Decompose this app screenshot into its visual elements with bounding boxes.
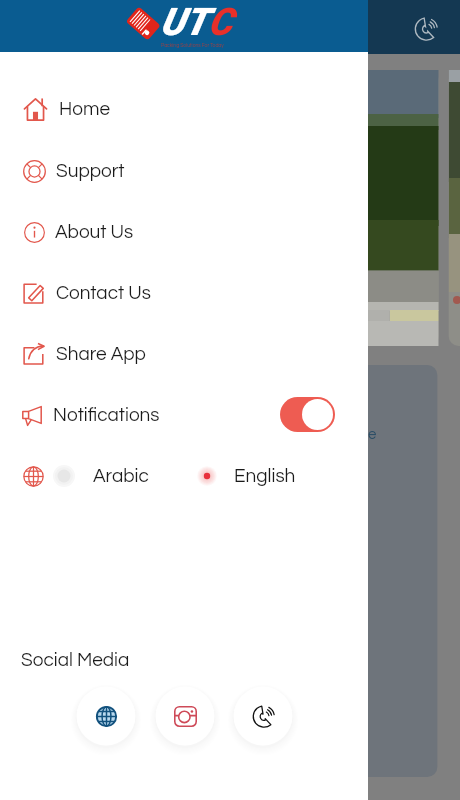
staticText: About Us xyxy=(55,222,134,242)
button[interactable]: Home xyxy=(0,78,368,139)
staticText: Contact Us xyxy=(56,283,151,303)
button[interactable]: Call xyxy=(414,17,438,41)
button[interactable]: Support xyxy=(0,140,368,201)
button[interactable]: About Us xyxy=(0,201,368,262)
staticText: Notifications xyxy=(53,405,160,425)
button[interactable]: Arabic xyxy=(51,463,149,489)
button[interactable]: Call xyxy=(234,687,293,746)
staticText: Packing Solutions For Today xyxy=(161,43,224,48)
button[interactable]: Contact Us xyxy=(0,262,368,323)
staticText: Share App xyxy=(56,344,146,364)
button[interactable]: Instagram xyxy=(156,687,215,746)
staticText: Social Media xyxy=(21,650,130,670)
button[interactable]: Share App xyxy=(0,323,368,384)
button[interactable]: Notifications xyxy=(0,384,368,445)
staticText: C xyxy=(208,0,233,45)
staticText: English xyxy=(234,466,296,486)
staticText: UT xyxy=(160,0,208,45)
staticText: e xyxy=(368,427,377,442)
button[interactable]: Website xyxy=(77,687,136,746)
staticText: Support xyxy=(56,161,125,181)
staticText: Arabic xyxy=(93,466,149,486)
button[interactable]: English xyxy=(194,463,296,489)
staticText: Home xyxy=(59,99,111,119)
button[interactable]: Notifications toggle xyxy=(280,397,335,432)
